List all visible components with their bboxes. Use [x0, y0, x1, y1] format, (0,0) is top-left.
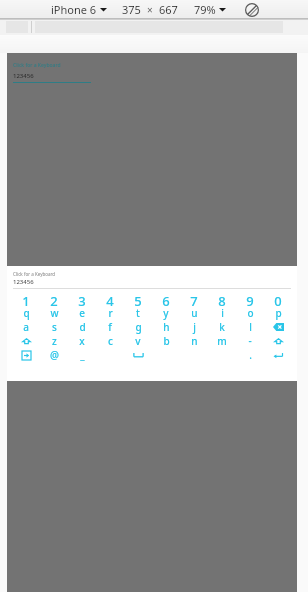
staticText: g: [135, 320, 142, 334]
button[interactable]: i: [208, 306, 236, 320]
staticText: 2: [50, 292, 58, 306]
staticText: u: [191, 306, 198, 320]
staticText: 4: [106, 292, 114, 306]
staticText: l: [249, 320, 252, 334]
staticText: t: [136, 306, 140, 320]
button[interactable]: 0: [264, 292, 292, 306]
staticText: w: [50, 306, 59, 320]
button[interactable]: t: [124, 306, 152, 320]
staticText: b: [163, 334, 170, 348]
staticText: z: [52, 334, 57, 348]
button[interactable]: v: [124, 334, 152, 348]
staticText: h: [163, 320, 170, 334]
button[interactable]: o: [236, 306, 264, 320]
button[interactable]: _: [68, 348, 96, 362]
button[interactable]: 79%: [192, 2, 228, 17]
staticText: 1: [22, 292, 30, 306]
staticText: y: [163, 306, 169, 320]
staticText: v: [135, 334, 141, 348]
button[interactable]: 9: [236, 292, 264, 306]
button[interactable]: g: [124, 320, 152, 334]
staticText: iPhone 6: [51, 2, 97, 17]
button[interactable]: h: [152, 320, 180, 334]
button[interactable]: k: [208, 320, 236, 334]
staticText: c: [108, 334, 113, 348]
staticText: 9: [246, 292, 254, 306]
button[interactable]: f: [96, 320, 124, 334]
staticText: p: [275, 306, 282, 320]
button[interactable]: 6: [152, 292, 180, 306]
button[interactable]: @: [40, 348, 68, 362]
staticText: e: [79, 306, 85, 320]
button[interactable]: r: [96, 306, 124, 320]
button[interactable]: z: [40, 334, 68, 348]
button[interactable]: .: [236, 348, 264, 362]
button[interactable]: c: [96, 334, 124, 348]
button[interactable]: 2: [40, 292, 68, 306]
staticText: 123456: [13, 72, 34, 80]
staticText: _: [80, 348, 85, 362]
staticText: k: [219, 320, 225, 334]
staticText: 375: [122, 2, 141, 17]
button[interactable]: Backspace: [264, 320, 292, 334]
button[interactable]: iPhone 6: [49, 2, 109, 17]
button[interactable]: 4: [96, 292, 124, 306]
staticText: Click for a Keyboard: [13, 62, 61, 69]
button[interactable]: Enter: [264, 348, 292, 362]
staticText: m: [217, 334, 227, 348]
button[interactable]: p: [264, 306, 292, 320]
button[interactable]: Shift: [12, 334, 40, 348]
staticText: Click for a Keyboard: [13, 271, 55, 277]
button[interactable]: 8: [208, 292, 236, 306]
button[interactable]: 5: [124, 292, 152, 306]
button[interactable]: m: [208, 334, 236, 348]
staticText: q: [23, 306, 30, 320]
button[interactable]: Shift: [264, 334, 292, 348]
staticText: o: [247, 306, 254, 320]
button[interactable]: 123456: [13, 72, 91, 83]
button[interactable]: Rotate device: [244, 2, 260, 18]
button[interactable]: 1: [12, 292, 40, 306]
button[interactable]: Space: [124, 348, 152, 362]
button[interactable]: 3: [68, 292, 96, 306]
button[interactable]: b: [152, 334, 180, 348]
button[interactable]: s: [40, 320, 68, 334]
button[interactable]: d: [68, 320, 96, 334]
button[interactable]: y: [152, 306, 180, 320]
button[interactable]: j: [180, 320, 208, 334]
staticText: 8: [218, 292, 226, 306]
staticText: f: [108, 320, 112, 334]
button[interactable]: l: [236, 320, 264, 334]
button[interactable]: a: [12, 320, 40, 334]
staticText: 123456: [13, 278, 34, 286]
staticText: 79%: [194, 2, 216, 17]
staticText: n: [191, 334, 198, 348]
button[interactable]: e: [68, 306, 96, 320]
staticText: s: [52, 320, 57, 334]
staticText: 7: [190, 292, 198, 306]
button[interactable]: x: [68, 334, 96, 348]
staticText: 0: [274, 292, 282, 306]
staticText: @: [50, 348, 59, 362]
staticText: .: [249, 348, 252, 362]
button[interactable]: w: [40, 306, 68, 320]
button[interactable]: -: [236, 334, 264, 348]
staticText: a: [23, 320, 29, 334]
staticText: -: [248, 334, 252, 348]
staticText: j: [193, 320, 196, 334]
button[interactable]: Tab: [12, 348, 40, 362]
staticText: 5: [134, 292, 142, 306]
staticText: 6: [162, 292, 170, 306]
button[interactable]: n: [180, 334, 208, 348]
staticText: 667: [159, 2, 178, 17]
staticText: x: [79, 334, 85, 348]
button[interactable]: 7: [180, 292, 208, 306]
staticText: ×: [147, 3, 153, 17]
button[interactable]: u: [180, 306, 208, 320]
staticText: d: [79, 320, 86, 334]
staticText: i: [221, 306, 224, 320]
button[interactable]: q: [12, 306, 40, 320]
